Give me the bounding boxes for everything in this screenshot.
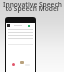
staticText: Innovative Speech [3, 0, 62, 9]
staticText: to Speech Model [5, 4, 59, 13]
